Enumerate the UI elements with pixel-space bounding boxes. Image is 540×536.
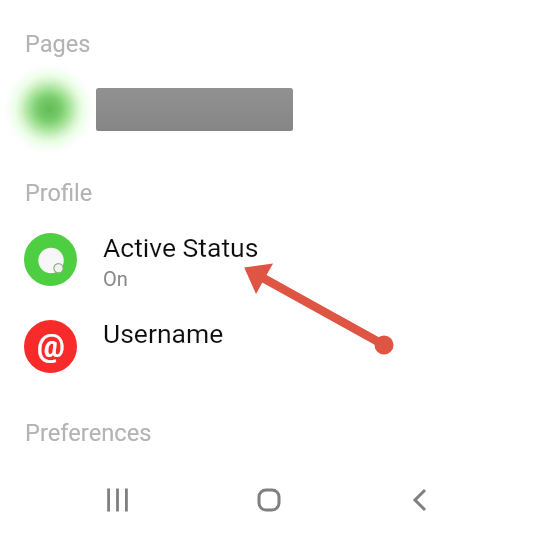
staticText: Active Status	[103, 232, 259, 263]
staticText: On	[103, 267, 128, 290]
staticText: Preferences	[25, 419, 152, 447]
button[interactable]: Active Status	[0, 226, 540, 292]
staticText: Username	[103, 318, 224, 349]
staticText: @	[37, 328, 65, 364]
button[interactable]: Recent apps	[87, 470, 147, 530]
staticText: Profile	[25, 179, 93, 207]
button[interactable]: Back	[390, 470, 450, 530]
button[interactable]: Home	[239, 470, 299, 530]
button[interactable]: Page	[0, 63, 540, 155]
button[interactable]: @	[0, 315, 540, 377]
staticText: Pages	[25, 30, 91, 58]
